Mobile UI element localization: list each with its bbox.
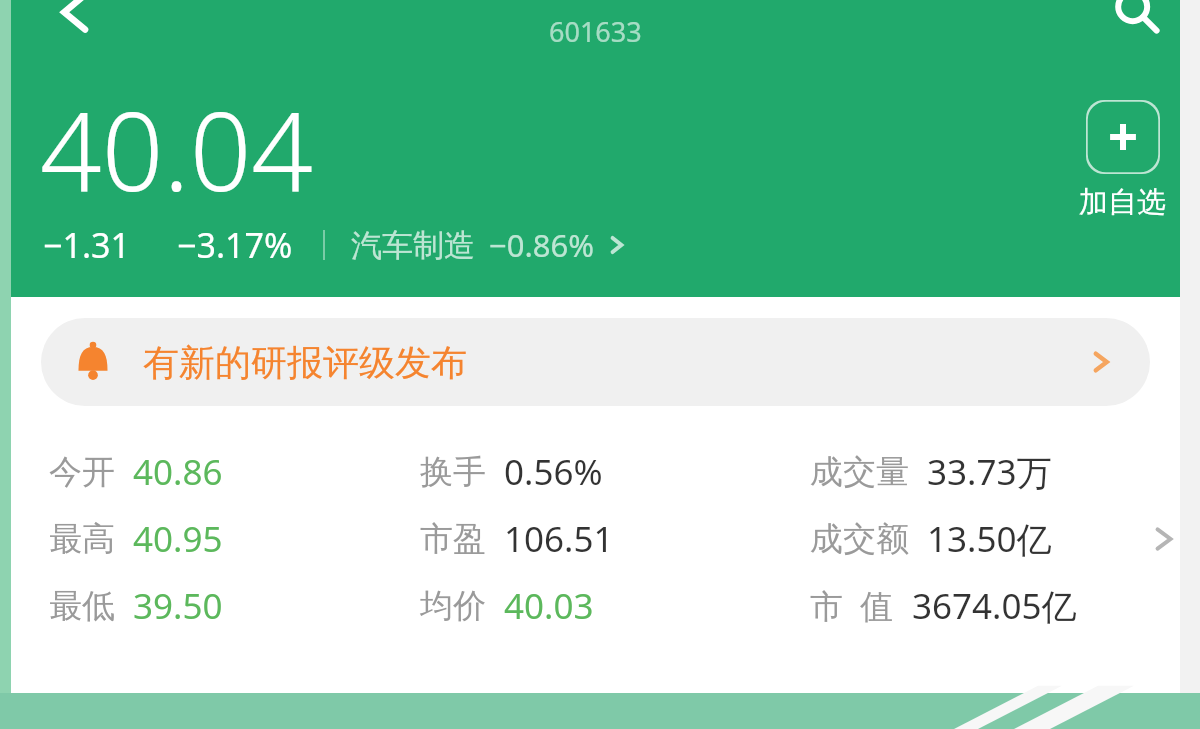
staticText: 39.50 <box>133 582 223 630</box>
staticText: 市 值 <box>810 583 894 628</box>
button[interactable]: 汽车制造 <box>351 224 628 266</box>
other: Add to watchlist <box>1086 100 1160 174</box>
staticText: −0.86% <box>489 224 594 266</box>
staticText: 最低 <box>49 585 115 627</box>
button[interactable]: More details <box>1146 522 1180 556</box>
staticText: 33.73万 <box>927 448 1052 496</box>
button[interactable]: Back <box>41 0 99 40</box>
staticText: 13.50亿 <box>927 515 1052 563</box>
staticText: 成交额 <box>810 518 909 560</box>
staticText: 0.56% <box>504 448 603 496</box>
staticText: −3.17% <box>177 222 293 268</box>
button[interactable]: Add to watchlist <box>1079 100 1166 221</box>
staticText: 3674.05亿 <box>912 582 1077 630</box>
staticText: 市盈 <box>420 518 486 560</box>
staticText: 40.95 <box>133 515 223 563</box>
button[interactable]: Search <box>1106 0 1164 38</box>
staticText: 有新的研报评级发布 <box>143 340 467 385</box>
staticText: 106.51 <box>504 515 614 563</box>
staticText: 成交量 <box>810 451 909 493</box>
staticText: 均价 <box>420 585 486 627</box>
staticText: 最高 <box>49 518 115 560</box>
staticText: 换手 <box>420 451 486 493</box>
staticText: 40.03 <box>504 582 594 630</box>
staticText: 40.04 <box>40 76 314 223</box>
button[interactable]: 有新的研报评级发布 <box>41 318 1150 406</box>
staticText: 汽车制造 <box>351 226 475 265</box>
staticText: 今开 <box>49 451 115 493</box>
staticText: 加自选 <box>1079 184 1166 221</box>
staticText: 40.86 <box>133 448 223 496</box>
staticText: −1.31 <box>43 222 130 268</box>
staticText: 601633 <box>549 13 642 50</box>
